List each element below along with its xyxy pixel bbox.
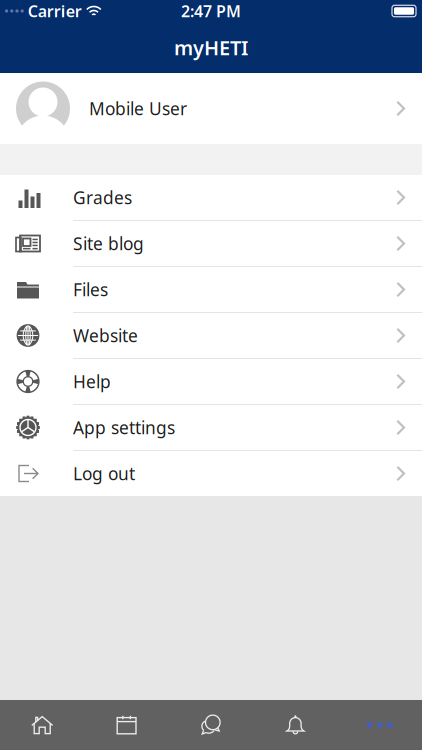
staticText: Website [73,324,138,347]
staticText: Grades [73,186,132,209]
button[interactable]: Help [0,359,422,405]
button[interactable]: Site blog [0,221,422,267]
staticText: Log out [73,462,135,485]
button[interactable]: Messages [169,713,253,737]
staticText: Mobile User [89,97,187,120]
button[interactable]: Files [0,267,422,313]
staticText: Files [73,278,108,301]
button[interactable]: Home [0,713,84,737]
button[interactable]: Grades [0,175,422,221]
staticText: Site blog [73,232,144,255]
button[interactable]: Mobile User [0,73,422,144]
staticText: Carrier [28,0,82,22]
staticText: App settings [73,416,175,439]
button[interactable]: App settings [0,405,422,451]
button[interactable]: Calendar [84,713,169,737]
button[interactable]: Website [0,313,422,359]
button[interactable]: Notifications [253,713,338,737]
button[interactable]: More [338,713,422,737]
staticText: myHETI [174,34,248,61]
staticText: Help [73,370,111,393]
staticText: 2:47 PM [181,0,241,22]
button[interactable]: Log out [0,451,422,496]
